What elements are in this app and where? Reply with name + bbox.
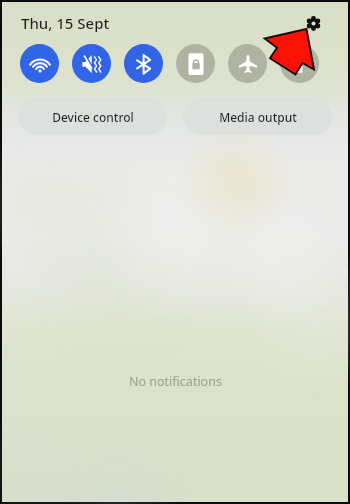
button[interactable]: Bluetooth [124, 44, 163, 83]
staticText: Thu, 15 Sept [21, 13, 110, 33]
staticText: Device control [52, 109, 134, 125]
button[interactable]: Settings [302, 12, 324, 34]
button[interactable]: Auto rotate [176, 44, 215, 83]
button[interactable]: Flashlight [280, 44, 319, 83]
staticText: Media output [219, 109, 297, 125]
button[interactable]: Media output [183, 98, 332, 135]
button[interactable]: Device control [18, 98, 167, 135]
button[interactable]: Airplane mode [228, 44, 267, 83]
button[interactable]: Wi-Fi [20, 44, 59, 83]
staticText: No notifications [129, 373, 222, 390]
button[interactable]: Sound mode [72, 44, 111, 83]
